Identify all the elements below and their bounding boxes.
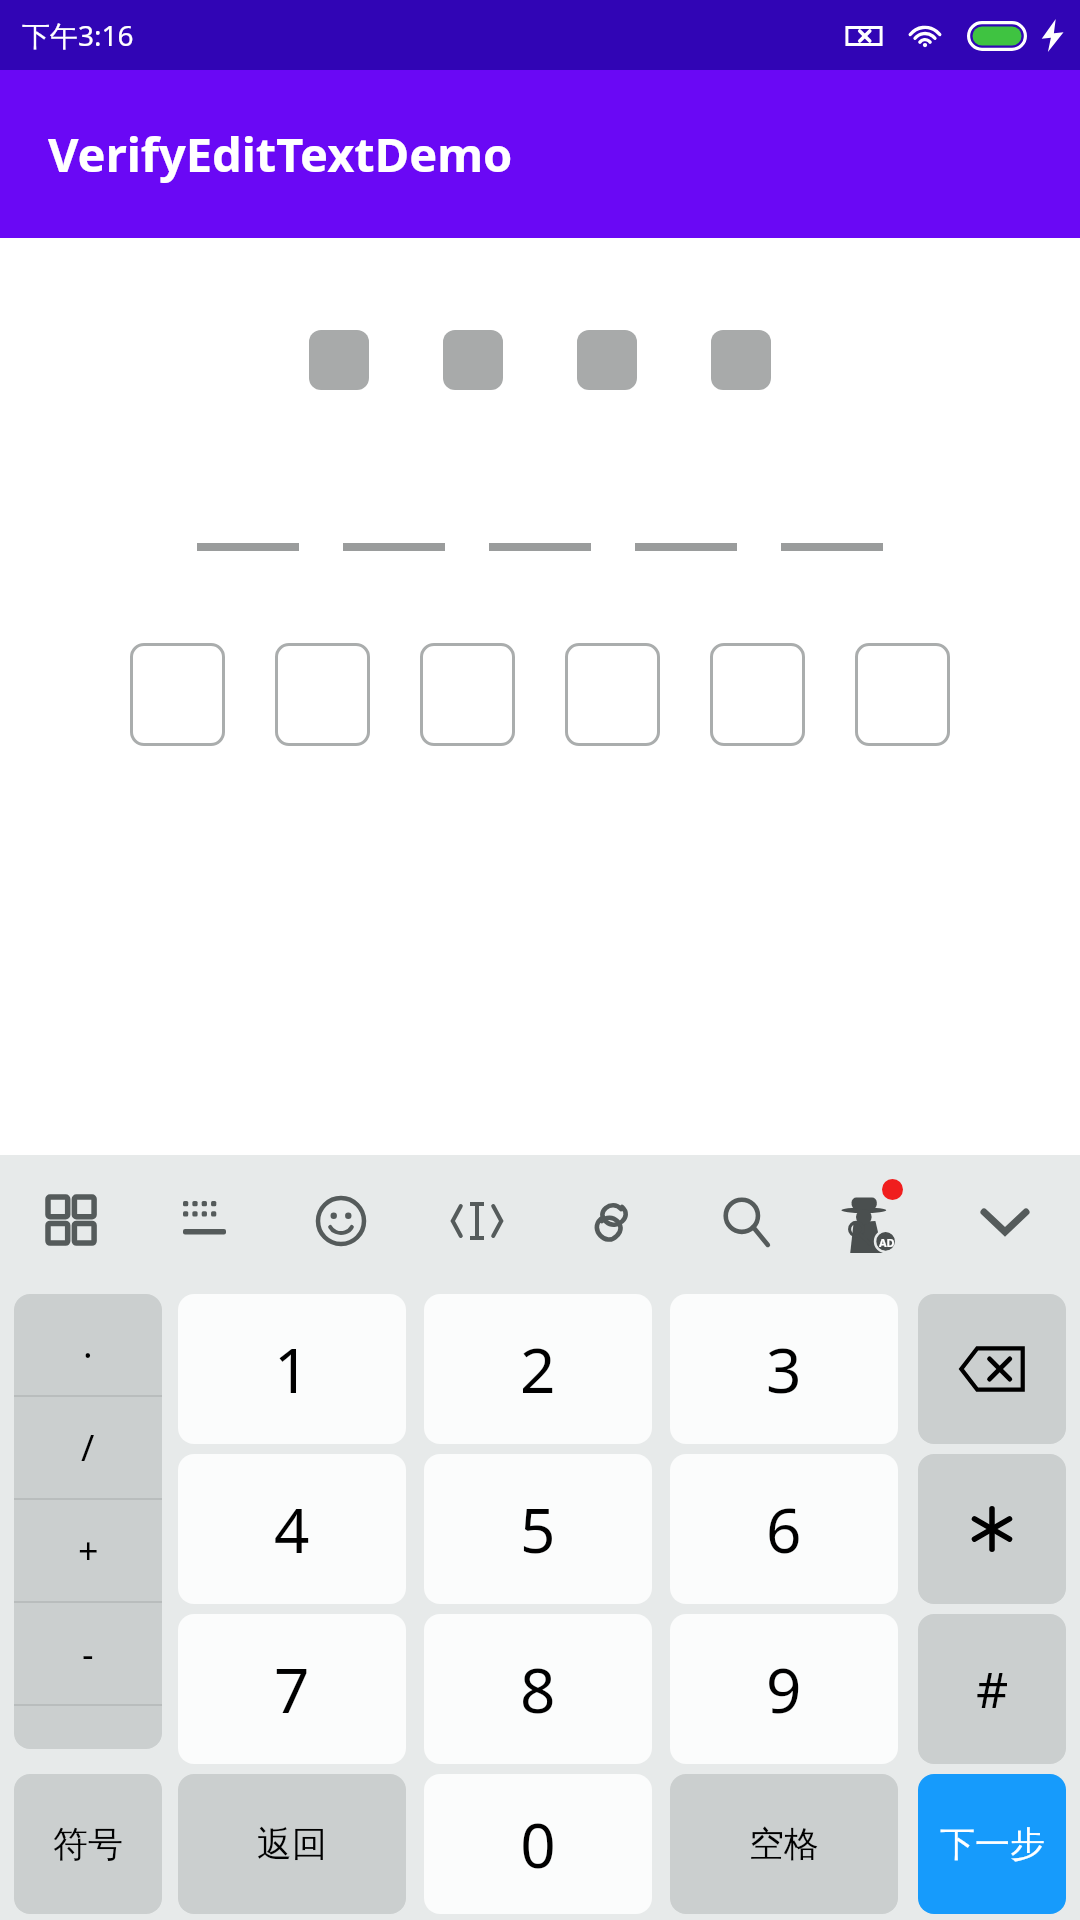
staticText: 符号 [53, 1822, 123, 1866]
button[interactable]: Emoji [297, 1177, 385, 1265]
staticText: 空格 [749, 1822, 819, 1866]
button[interactable]: Hide keyboard [961, 1177, 1049, 1265]
button[interactable] [711, 330, 771, 390]
button[interactable]: Edit text [433, 1177, 521, 1265]
button[interactable] [710, 643, 805, 746]
button[interactable]: 返回 [178, 1774, 406, 1914]
button[interactable]: Search [702, 1177, 790, 1265]
button[interactable] [14, 1706, 162, 1749]
staticText: 6 [766, 1487, 802, 1571]
button[interactable] [565, 643, 660, 746]
staticText: 下一步 [940, 1822, 1045, 1866]
staticText: 下午3:16 [22, 16, 134, 54]
button[interactable] [420, 643, 515, 746]
button[interactable]: Ad blocker [828, 1177, 916, 1265]
staticText: 3 [766, 1327, 802, 1411]
button[interactable]: Keyboard settings [164, 1177, 252, 1265]
staticText: + [78, 1526, 99, 1575]
button[interactable]: # [918, 1614, 1066, 1764]
button[interactable] [443, 330, 503, 390]
button[interactable]: 8 [424, 1614, 652, 1764]
button[interactable]: - [14, 1603, 162, 1704]
staticText: 0 [520, 1802, 556, 1886]
button[interactable]: 空格 [670, 1774, 898, 1914]
staticText: 4 [274, 1487, 310, 1571]
button[interactable]: 5 [424, 1454, 652, 1604]
staticText: 2 [520, 1327, 556, 1411]
staticText: AD [879, 1235, 895, 1250]
button[interactable] [855, 643, 950, 746]
staticText: 5 [520, 1487, 556, 1571]
button[interactable] [309, 330, 369, 390]
button[interactable]: Attach [567, 1177, 655, 1265]
button[interactable]: / [14, 1397, 162, 1498]
staticText: 1 [274, 1327, 310, 1411]
button[interactable]: 1 [178, 1294, 406, 1444]
button[interactable]: + [14, 1500, 162, 1601]
button[interactable]: Keyboard layouts [28, 1177, 116, 1265]
button[interactable]: 9 [670, 1614, 898, 1764]
button[interactable]: 0 [424, 1774, 652, 1914]
button[interactable]: 4 [178, 1454, 406, 1604]
button[interactable]: 6 [670, 1454, 898, 1604]
button[interactable] [275, 643, 370, 746]
button[interactable] [577, 330, 637, 390]
staticText: 返回 [257, 1822, 327, 1866]
button[interactable] [918, 1454, 1066, 1604]
staticText: - [82, 1629, 94, 1678]
button[interactable]: 3 [670, 1294, 898, 1444]
staticText: / [81, 1423, 95, 1472]
staticText: 9 [766, 1647, 802, 1731]
staticText: 7 [274, 1647, 310, 1731]
button[interactable]: Backspace [918, 1294, 1066, 1444]
staticText: . [83, 1320, 93, 1369]
button[interactable] [130, 643, 225, 746]
staticText: # [976, 1655, 1009, 1723]
button[interactable]: 符号 [14, 1774, 162, 1914]
staticText: 8 [520, 1647, 556, 1731]
button[interactable]: . [14, 1294, 162, 1395]
button[interactable]: 下一步 [918, 1774, 1066, 1914]
button[interactable]: 2 [424, 1294, 652, 1444]
button[interactable]: 7 [178, 1614, 406, 1764]
staticText: VerifyEditTextDemo [48, 122, 513, 186]
